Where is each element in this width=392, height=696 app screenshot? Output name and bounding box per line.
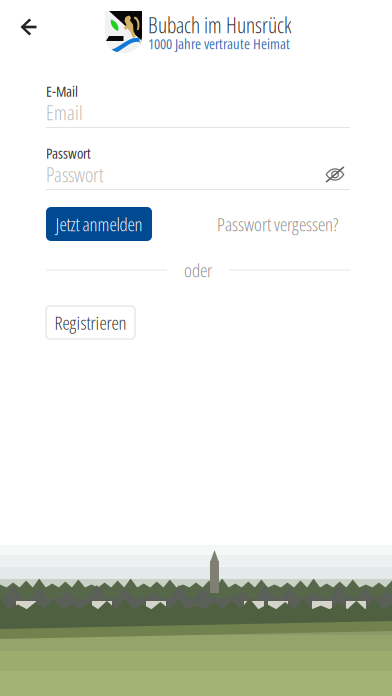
staticText: Passwort vergessen? bbox=[217, 211, 338, 237]
staticText: Jetzt anmelden bbox=[55, 211, 142, 237]
staticText: Passwort bbox=[46, 143, 91, 163]
staticText: oder bbox=[184, 257, 212, 283]
button[interactable]: Registrieren bbox=[46, 306, 135, 339]
button[interactable]: Jetzt anmelden bbox=[46, 207, 152, 241]
staticText: Passwort bbox=[46, 161, 104, 188]
button[interactable]: Passwort vergessen? bbox=[217, 207, 338, 241]
button[interactable]: Zurück bbox=[7, 5, 51, 49]
staticText: 1000 Jahre vertraute Heimat bbox=[148, 33, 290, 53]
staticText: E-Mail bbox=[46, 81, 78, 101]
button[interactable]: Passwort anzeigen bbox=[320, 161, 350, 187]
staticText: Registrieren bbox=[54, 310, 126, 335]
staticText: Bubach im Hunsrück bbox=[148, 10, 292, 40]
staticText: Email bbox=[46, 99, 83, 126]
